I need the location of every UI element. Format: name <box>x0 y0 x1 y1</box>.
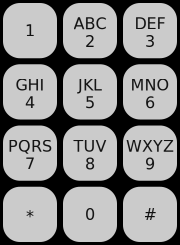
button[interactable]: 1 <box>3 3 57 58</box>
button[interactable]: Star <box>3 187 57 242</box>
staticText: # <box>143 205 156 224</box>
staticText: 6 <box>145 93 155 112</box>
staticText: DEF <box>134 14 165 33</box>
staticText: 4 <box>25 93 35 112</box>
button[interactable]: 2 ABC <box>63 3 117 58</box>
staticText: 2 <box>85 32 95 51</box>
button[interactable]: 4 GHI <box>3 64 57 119</box>
button[interactable]: 8 TUV <box>63 125 117 181</box>
button[interactable]: 0 <box>63 187 117 242</box>
staticText: JKL <box>78 76 102 94</box>
staticText: TUV <box>73 137 106 156</box>
staticText: 7 <box>25 155 35 173</box>
staticText: WXYZ <box>126 137 174 156</box>
staticText: 8 <box>85 155 95 173</box>
staticText: 0 <box>85 205 95 224</box>
staticText: 9 <box>145 155 155 173</box>
staticText: 5 <box>85 93 95 112</box>
staticText: GHI <box>15 76 44 94</box>
button[interactable]: 3 DEF <box>123 3 177 58</box>
button[interactable]: 5 JKL <box>63 64 117 119</box>
button[interactable]: Pound <box>123 187 177 242</box>
staticText: 1 <box>25 21 35 40</box>
staticText: * <box>26 207 34 226</box>
button[interactable]: 7 PQRS <box>3 125 57 181</box>
staticText: 3 <box>145 32 155 51</box>
staticText: ABC <box>73 14 106 33</box>
button[interactable]: 6 MNO <box>123 64 177 119</box>
staticText: MNO <box>130 76 169 94</box>
button[interactable]: 9 WXYZ <box>123 125 177 181</box>
staticText: PQRS <box>8 137 52 156</box>
